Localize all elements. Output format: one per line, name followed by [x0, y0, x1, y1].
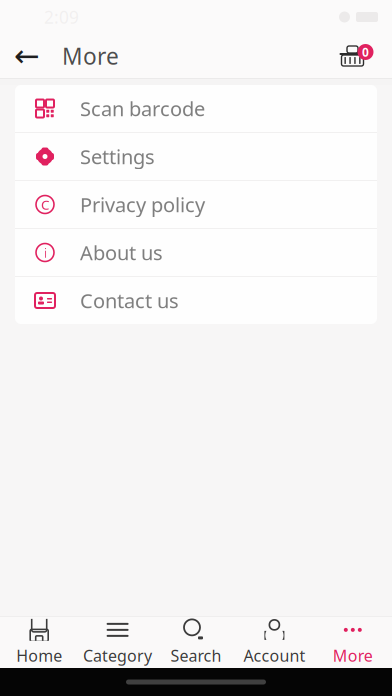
- staticText: i: [43, 244, 46, 261]
- button[interactable]: i: [15, 229, 377, 277]
- staticText: ←: [14, 39, 40, 73]
- button[interactable]: C: [15, 181, 377, 229]
- button[interactable]: Scan barcode: [15, 85, 377, 133]
- staticText: 0: [362, 44, 369, 60]
- staticText: 2:09: [44, 5, 79, 28]
- button[interactable]: Back: [5, 34, 49, 78]
- staticText: More: [62, 41, 119, 71]
- staticText: Home: [16, 645, 62, 666]
- staticText: Contact us: [80, 287, 179, 314]
- staticText: More: [333, 645, 373, 666]
- staticText: About us: [80, 239, 163, 266]
- staticText: Privacy policy: [80, 191, 205, 218]
- staticText: Search: [170, 645, 221, 666]
- staticText: Category: [83, 645, 152, 666]
- staticText: C: [41, 196, 49, 213]
- button[interactable]: Search: [157, 617, 235, 668]
- staticText: Settings: [80, 143, 155, 170]
- staticText: Account: [243, 645, 305, 666]
- button[interactable]: Contact us: [15, 277, 377, 324]
- staticText: Scan barcode: [80, 95, 205, 122]
- button[interactable]: Settings: [15, 133, 377, 181]
- button[interactable]: Account: [235, 617, 314, 668]
- button[interactable]: Home: [0, 617, 78, 668]
- button[interactable]: Category: [78, 617, 157, 668]
- button[interactable]: More: [314, 617, 392, 668]
- button[interactable]: Cart: [328, 34, 384, 78]
